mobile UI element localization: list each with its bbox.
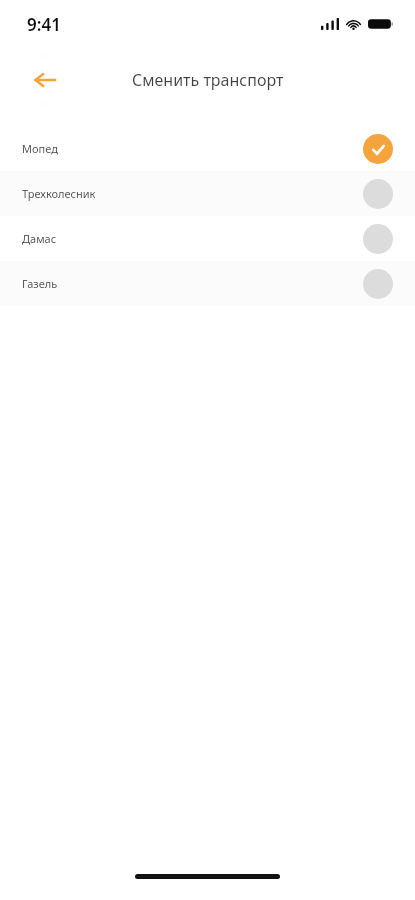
staticText: 9:41 — [27, 13, 61, 36]
button[interactable]: Дамас — [0, 216, 415, 261]
button[interactable]: Мопед — [0, 126, 415, 171]
button[interactable]: Газель — [0, 261, 415, 306]
staticText: Дамас — [22, 231, 363, 246]
button[interactable]: Трехколесник — [0, 171, 415, 216]
button[interactable]: Назад — [20, 57, 70, 103]
staticText: Газель — [22, 276, 363, 291]
staticText: Мопед — [22, 141, 363, 156]
staticText: Сменить транспорт — [132, 69, 284, 91]
staticText: Трехколесник — [22, 186, 363, 201]
